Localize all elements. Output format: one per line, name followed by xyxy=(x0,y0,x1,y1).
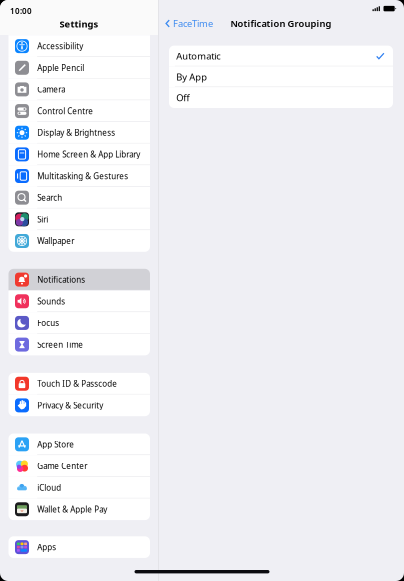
button[interactable]: Game Center xyxy=(8,455,150,477)
staticText: App Store xyxy=(37,439,74,450)
staticText: Touch ID & Passcode xyxy=(37,378,117,389)
button[interactable]: Camera xyxy=(8,79,150,100)
button[interactable]: Automatic xyxy=(169,46,393,66)
staticText: Notification Grouping xyxy=(230,17,331,30)
staticText: Wallpaper xyxy=(37,236,74,246)
staticText: Sounds xyxy=(37,296,65,307)
staticText: Focus xyxy=(37,318,59,328)
button[interactable]: Sounds xyxy=(8,290,150,312)
staticText: iCloud xyxy=(37,482,61,493)
button[interactable]: Apple Pencil xyxy=(8,57,150,78)
staticText: Display & Brightness xyxy=(37,127,115,138)
staticText: Apple Pencil xyxy=(37,62,84,73)
staticText: Home Screen & App Library xyxy=(37,149,140,160)
staticText: Game Center xyxy=(37,461,87,471)
button[interactable]: By App xyxy=(169,66,393,87)
staticText: Control Centre xyxy=(37,106,93,116)
button[interactable]: iCloud xyxy=(8,477,150,498)
staticText: Apps xyxy=(37,542,56,552)
staticText: Settings xyxy=(59,18,98,30)
staticText: Screen Time xyxy=(37,339,83,350)
button[interactable]: Apps xyxy=(8,536,150,558)
staticText: Camera xyxy=(37,84,65,95)
button[interactable]: Touch ID & Passcode xyxy=(8,373,150,394)
button[interactable]: Home Screen & App Library xyxy=(8,144,150,165)
staticText: Notifications xyxy=(37,274,85,285)
staticText: Search xyxy=(37,192,62,203)
button[interactable]: App Store xyxy=(8,433,150,455)
button[interactable]: Off xyxy=(169,87,393,108)
button[interactable]: Search xyxy=(8,187,150,208)
button[interactable]: Siri xyxy=(8,208,150,230)
button[interactable]: FaceTime xyxy=(163,14,215,32)
button[interactable]: Display & Brightness xyxy=(8,122,150,143)
staticText: Automatic xyxy=(176,50,220,62)
staticText: By App xyxy=(176,71,207,83)
button[interactable]: Control Centre xyxy=(8,100,150,122)
staticText: Wallet & Apple Pay xyxy=(37,504,107,515)
button[interactable]: Multitasking & Gestures xyxy=(8,165,150,187)
button[interactable]: Focus xyxy=(8,312,150,334)
button[interactable]: Wallpaper xyxy=(8,230,150,252)
button[interactable]: Accessibility xyxy=(8,35,150,57)
button[interactable]: Wallet & Apple Pay xyxy=(8,498,150,520)
button[interactable]: Notifications xyxy=(8,269,150,290)
staticText: Siri xyxy=(37,214,48,225)
button[interactable]: Screen Time xyxy=(8,334,150,355)
staticText: Multitasking & Gestures xyxy=(37,171,128,181)
staticText: Off xyxy=(176,91,189,104)
button[interactable]: Privacy & Security xyxy=(8,395,150,416)
staticText: FaceTime xyxy=(173,17,213,30)
staticText: 10:00 xyxy=(10,5,32,16)
staticText: Accessibility xyxy=(37,41,83,51)
staticText: Privacy & Security xyxy=(37,400,103,411)
